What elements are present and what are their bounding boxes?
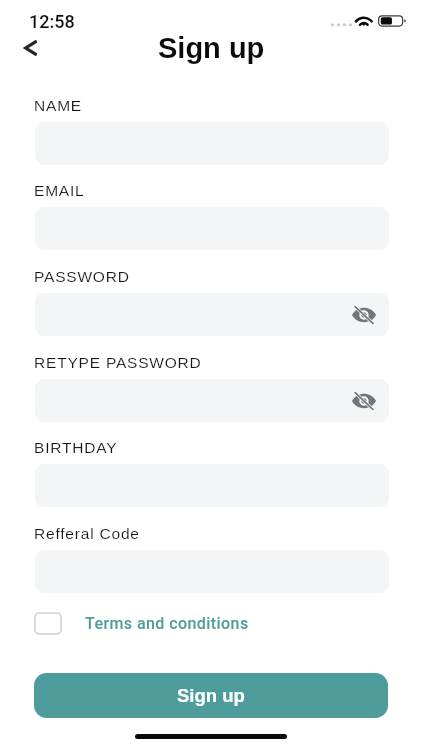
button[interactable]: Back xyxy=(12,30,48,66)
button[interactable]: Toggle password visibility xyxy=(346,297,382,333)
staticText: NAME xyxy=(34,97,82,114)
staticText: PASSWORD xyxy=(34,268,130,285)
staticText: EMAIL xyxy=(34,182,85,199)
staticText: Sign up xyxy=(177,685,245,706)
button[interactable]: Sign up xyxy=(34,673,388,718)
staticText: Sign up xyxy=(158,32,265,64)
button[interactable]: Terms and conditions xyxy=(30,604,249,642)
staticText: RETYPE PASSWORD xyxy=(34,354,202,371)
staticText: Terms and conditions xyxy=(85,614,249,633)
button[interactable]: Toggle password visibility xyxy=(35,293,389,336)
staticText: BIRTHDAY xyxy=(34,439,118,456)
button[interactable]: Toggle password visibility xyxy=(346,383,382,419)
staticText: Refferal Code xyxy=(34,525,140,542)
staticText: 12:58 xyxy=(29,11,75,32)
button[interactable]: Toggle password visibility xyxy=(35,379,389,422)
